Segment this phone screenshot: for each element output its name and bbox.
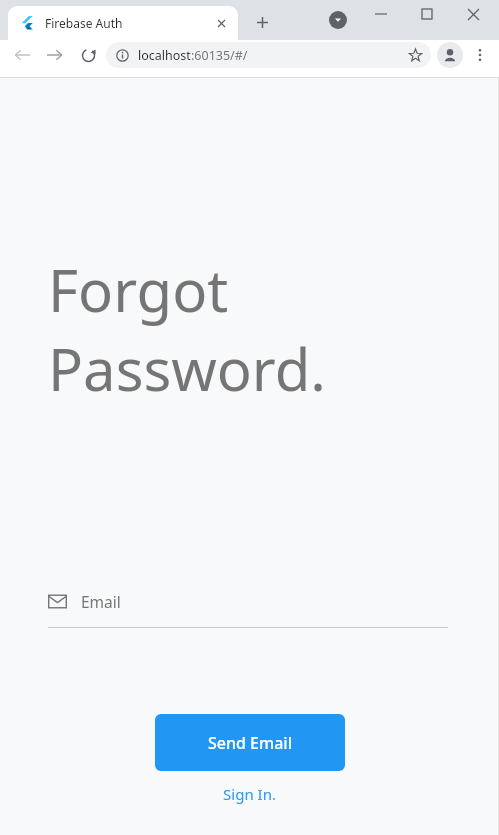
- staticText: :60135/#/: [191, 47, 248, 64]
- button[interactable]: Close tab: [210, 12, 232, 34]
- button[interactable]: Reload: [73, 40, 103, 70]
- button[interactable]: Maximize: [410, 0, 444, 28]
- staticText: Email: [81, 591, 121, 612]
- button[interactable]: Minimize: [364, 0, 398, 28]
- button[interactable]: Customize and control Chrome: [467, 42, 493, 68]
- staticText: Forgot: [48, 250, 229, 329]
- button[interactable]: Close: [456, 0, 490, 28]
- button[interactable]: Bookmark this tab: [405, 45, 425, 65]
- staticText: localhost: [138, 47, 191, 64]
- button[interactable]: Email: [48, 591, 448, 628]
- button[interactable]: Send Email: [155, 714, 345, 771]
- staticText: Firebase Auth: [45, 15, 210, 31]
- button[interactable]: Firebase Auth: [8, 6, 238, 40]
- button[interactable]: Forward: [40, 40, 70, 70]
- button[interactable]: New tab: [248, 8, 276, 36]
- button[interactable]: Profile: [437, 42, 463, 68]
- button[interactable]: Search tabs: [327, 9, 349, 31]
- button[interactable]: Sign In.: [223, 784, 276, 804]
- staticText: Password.: [48, 329, 326, 408]
- staticText: Sign In.: [223, 784, 276, 804]
- button[interactable]: Back: [7, 40, 37, 70]
- staticText: Send Email: [208, 732, 292, 754]
- button[interactable]: localhost: [106, 42, 431, 68]
